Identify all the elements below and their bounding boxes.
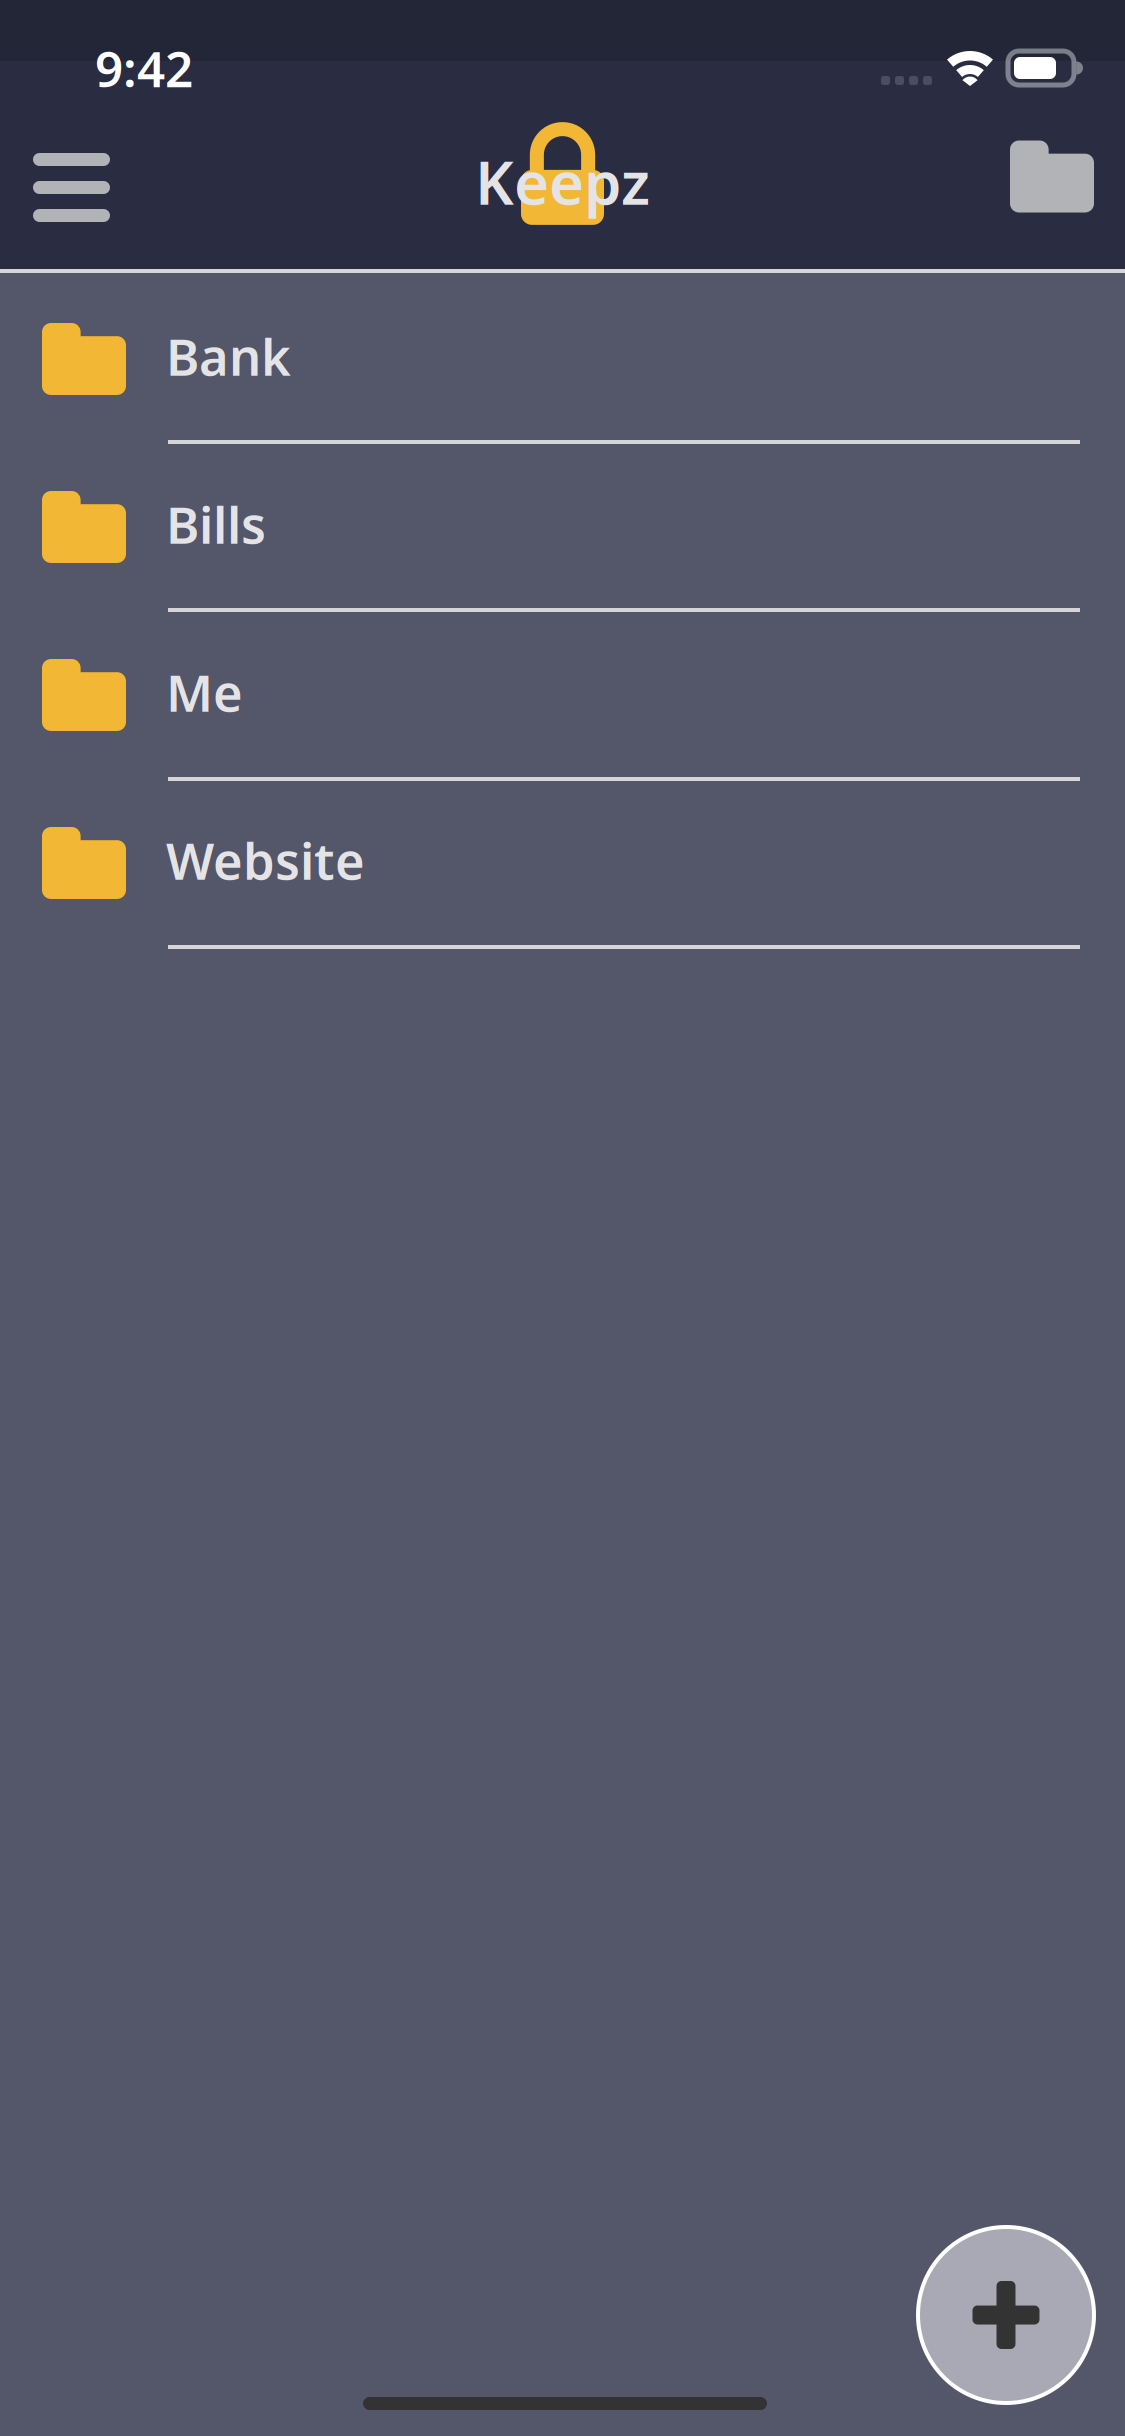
button[interactable]: Bank [0,273,1125,441]
button[interactable]: Add [917,2226,1095,2404]
staticText: Bills [166,490,266,558]
staticText: Bank [166,322,291,390]
staticText: Me [166,658,243,726]
button[interactable]: Website [0,777,1125,945]
staticText: Keepz [475,142,650,221]
button[interactable]: Me [0,609,1125,777]
button[interactable]: Bills [0,441,1125,609]
staticText: Website [166,826,365,894]
button[interactable]: Menu [16,132,127,243]
staticText: 9:42 [95,35,193,101]
button[interactable]: Folders [995,121,1109,232]
